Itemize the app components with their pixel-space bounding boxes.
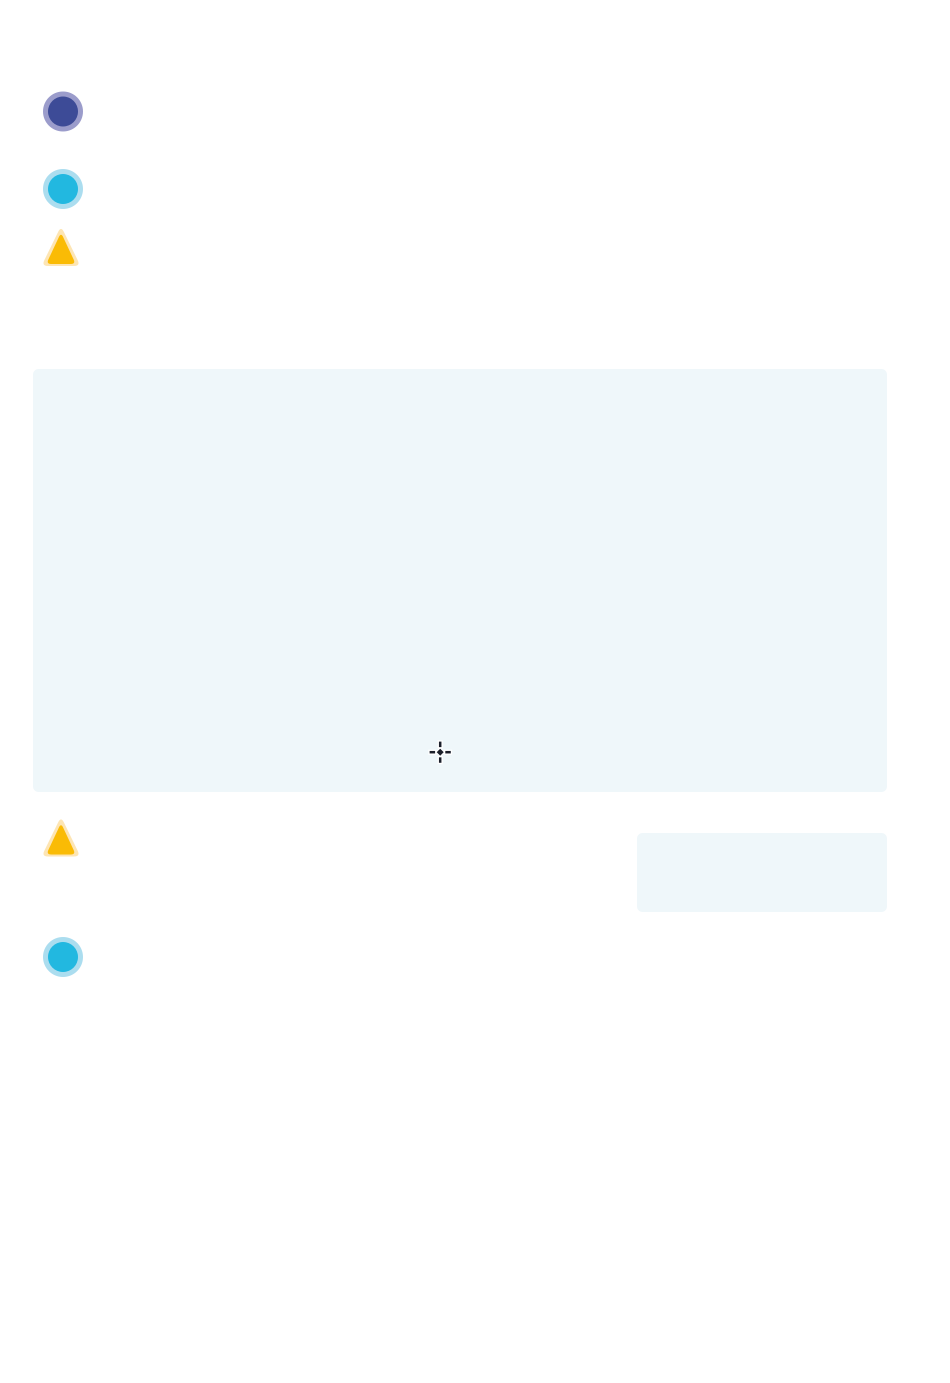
button[interactable]: Live vehicle [43, 937, 83, 977]
button[interactable]: Live vehicle [43, 169, 83, 209]
button[interactable]: Service alert [41, 226, 80, 266]
button[interactable]: Service alert [41, 816, 80, 856]
button[interactable]: Route [43, 91, 83, 131]
button[interactable]: Recenter map [427, 739, 453, 765]
